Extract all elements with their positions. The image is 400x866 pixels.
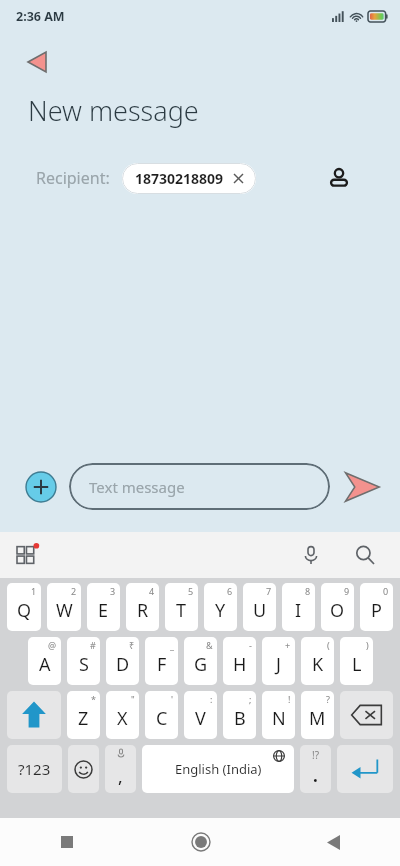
staticText: K xyxy=(312,652,324,677)
button[interactable]: ; xyxy=(223,691,256,739)
button[interactable]: Add attachment xyxy=(24,470,58,504)
button[interactable]: ?123 xyxy=(7,745,62,793)
staticText: Recipient: xyxy=(36,167,110,189)
button[interactable]: English (India) xyxy=(142,745,294,793)
staticText: M xyxy=(309,706,326,731)
button[interactable]: Home xyxy=(134,818,267,866)
staticText: 7 xyxy=(266,585,272,597)
staticText: 4 xyxy=(149,585,155,597)
button[interactable]: Emoji xyxy=(68,745,99,793)
staticText: 3 xyxy=(110,585,116,597)
button[interactable]: 18730218809 xyxy=(122,163,256,194)
staticText: 8 xyxy=(305,585,311,597)
staticText: I xyxy=(295,598,302,623)
staticText: U xyxy=(253,598,267,623)
button[interactable]: Back xyxy=(267,818,400,866)
button[interactable]: 6 xyxy=(204,583,237,631)
staticText: P xyxy=(371,598,382,623)
staticText: D xyxy=(116,652,130,677)
button[interactable]: Send xyxy=(342,467,382,507)
staticText: New message xyxy=(28,92,199,129)
button[interactable]: Enter xyxy=(337,745,393,793)
button[interactable]: " xyxy=(106,691,139,739)
staticText: 18730218809 xyxy=(135,169,224,188)
button[interactable]: + xyxy=(262,637,295,685)
staticText: Y xyxy=(215,598,226,623)
staticText: # xyxy=(90,639,96,651)
button[interactable]: : xyxy=(184,691,217,739)
button[interactable]: 7 xyxy=(243,583,276,631)
button[interactable]: ? xyxy=(301,691,334,739)
staticText: - xyxy=(249,639,252,651)
button[interactable]: 9 xyxy=(321,583,354,631)
staticText: _ xyxy=(170,639,174,651)
button[interactable]: ) xyxy=(340,637,373,685)
staticText: S xyxy=(79,652,89,677)
button[interactable]: - xyxy=(223,637,256,685)
button[interactable]: Recents xyxy=(0,818,134,866)
button[interactable]: 1 xyxy=(7,583,41,631)
button[interactable]: 0 xyxy=(360,583,393,631)
staticText: & xyxy=(206,639,213,651)
button[interactable]: 5 xyxy=(165,583,198,631)
button[interactable]: & xyxy=(184,637,217,685)
staticText: W xyxy=(56,598,73,623)
staticText: + xyxy=(285,639,291,651)
staticText: !? xyxy=(312,748,320,762)
button[interactable]: ! xyxy=(262,691,295,739)
button[interactable]: ' xyxy=(145,691,178,739)
staticText: N xyxy=(272,706,286,731)
staticText: @ xyxy=(48,639,57,651)
staticText: B xyxy=(234,706,246,731)
staticText: O xyxy=(330,598,345,623)
button[interactable]: _ xyxy=(145,637,178,685)
staticText: 2 xyxy=(71,585,77,597)
button[interactable]: Backspace xyxy=(340,691,393,739)
staticText: * xyxy=(91,693,96,705)
staticText: 5 xyxy=(188,585,194,597)
staticText: . xyxy=(313,764,318,787)
staticText: ! xyxy=(288,693,291,705)
button[interactable]: Shift xyxy=(7,691,61,739)
staticText: , xyxy=(118,765,123,788)
staticText: J xyxy=(276,652,281,677)
button[interactable]: ₹ xyxy=(106,637,139,685)
staticText: A xyxy=(39,652,51,677)
staticText: Text message xyxy=(89,477,185,497)
button[interactable]: 2 xyxy=(47,583,81,631)
button[interactable]: # xyxy=(67,637,100,685)
button[interactable]: @ xyxy=(28,637,61,685)
button[interactable]: Comma xyxy=(105,745,136,793)
button[interactable]: Voice input xyxy=(294,538,328,572)
staticText: X xyxy=(117,706,128,731)
staticText: V xyxy=(195,706,206,731)
staticText: 6 xyxy=(227,585,233,597)
button[interactable]: 3 xyxy=(87,583,120,631)
staticText: T xyxy=(176,598,187,623)
button[interactable]: Search xyxy=(348,538,382,572)
staticText: R xyxy=(137,598,149,623)
button[interactable]: Stickers xyxy=(12,539,44,571)
staticText: F xyxy=(157,652,167,677)
button[interactable]: Contacts xyxy=(322,161,356,195)
staticText: Q xyxy=(17,598,32,623)
button[interactable]: Period xyxy=(300,745,331,793)
staticText: ?123 xyxy=(18,759,51,779)
button[interactable]: Back xyxy=(28,44,64,80)
button[interactable]: 4 xyxy=(126,583,159,631)
button[interactable]: 8 xyxy=(282,583,315,631)
button[interactable]: Text message xyxy=(69,463,330,510)
staticText: 9 xyxy=(344,585,350,597)
staticText: ; xyxy=(249,693,252,705)
staticText: L xyxy=(352,652,362,677)
staticText: G xyxy=(194,652,208,677)
staticText: : xyxy=(210,693,213,705)
staticText: " xyxy=(131,693,135,705)
staticText: 0 xyxy=(383,585,389,597)
button[interactable]: ( xyxy=(301,637,334,685)
staticText: E xyxy=(98,598,109,623)
staticText: ₹ xyxy=(129,639,135,651)
staticText: Z xyxy=(78,706,89,731)
button[interactable]: * xyxy=(67,691,100,739)
staticText: C xyxy=(156,706,168,731)
